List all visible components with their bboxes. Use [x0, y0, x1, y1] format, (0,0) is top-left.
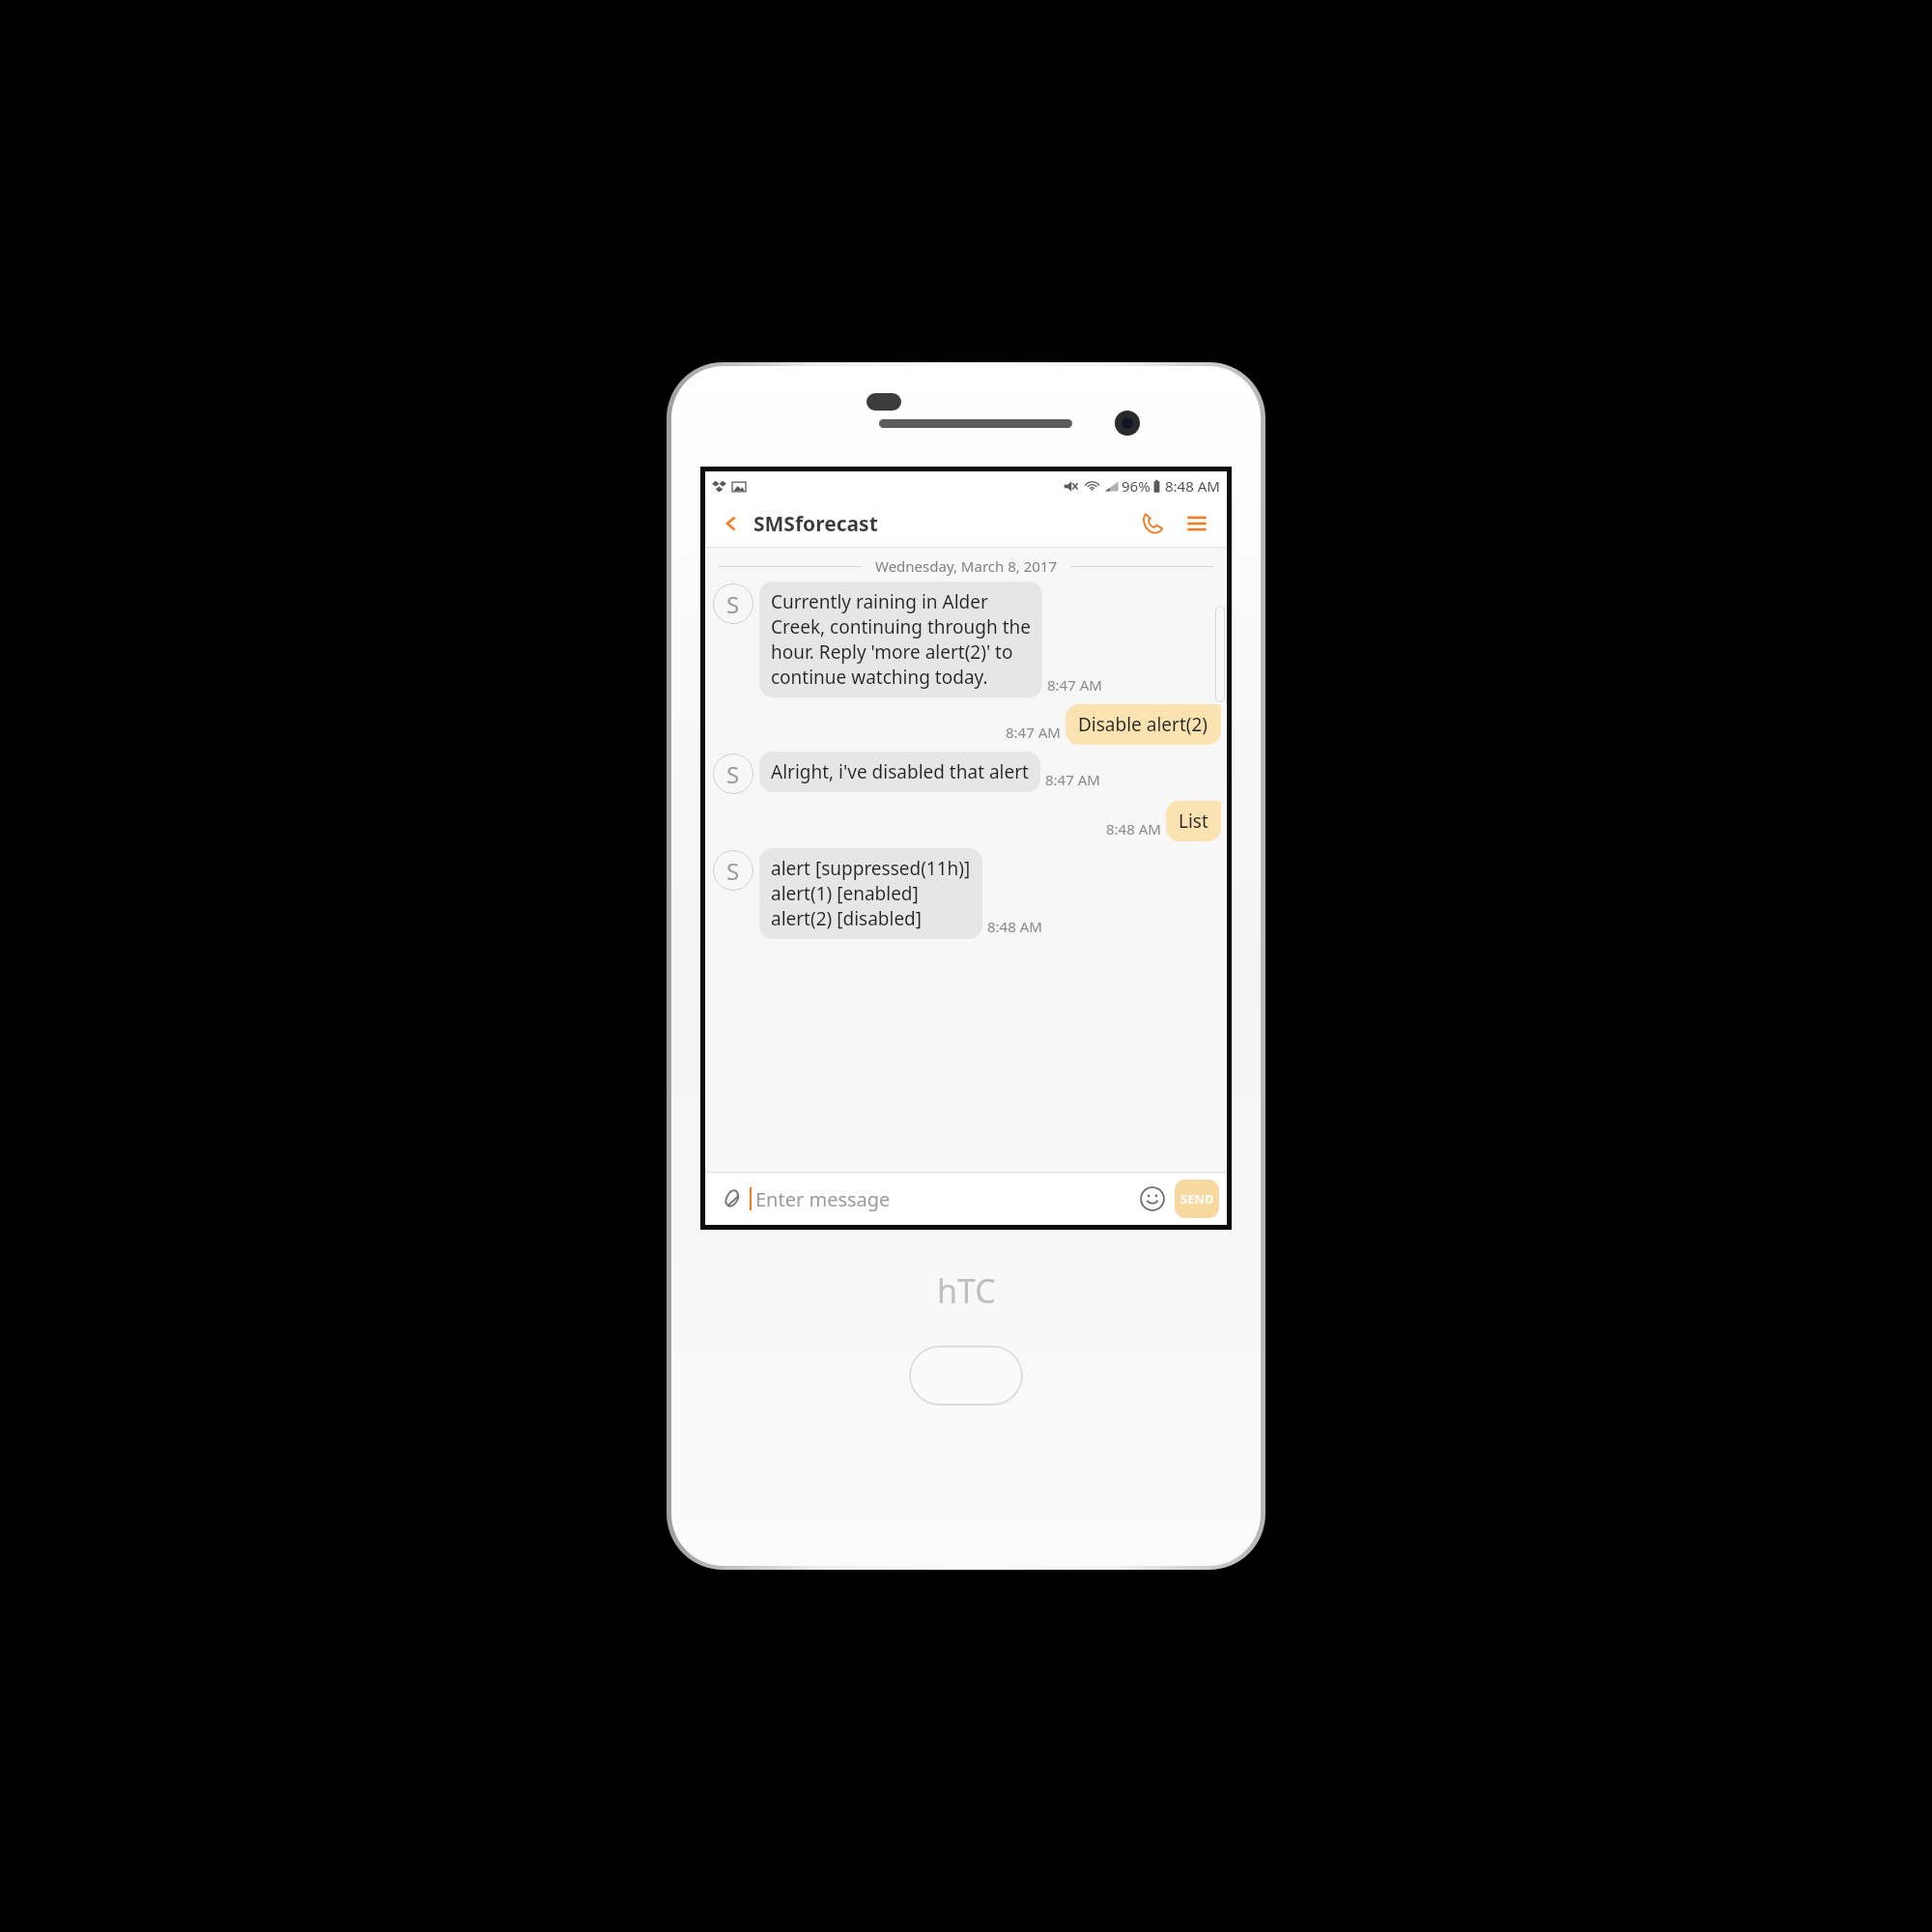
staticText: hTC	[937, 1268, 996, 1313]
button[interactable]: Disable alert(2)	[1065, 704, 1221, 745]
staticText: alert(1) [enabled]	[771, 881, 919, 906]
button[interactable]: Menu	[1179, 505, 1215, 542]
staticText: SEND	[1180, 1190, 1214, 1207]
button[interactable]: Back	[715, 507, 748, 540]
staticText: continue watching today.	[771, 665, 988, 690]
staticText: Disable alert(2)	[1078, 712, 1208, 737]
staticText: Creek, continuing through the	[771, 614, 1031, 639]
staticText: List	[1179, 809, 1208, 834]
button[interactable]: alert [suppressed(11h)]	[759, 848, 982, 939]
staticText: S	[726, 758, 740, 790]
staticText: hour. Reply 'more alert(2)' to	[771, 639, 1013, 665]
button[interactable]: Home	[909, 1346, 1023, 1406]
button[interactable]: Currently raining in Alder	[759, 582, 1042, 697]
staticText: Currently raining in Alder	[771, 589, 988, 614]
staticText: Enter message	[755, 1186, 1134, 1212]
staticText: 8:48 AM	[1106, 819, 1161, 838]
staticText: 8:47 AM	[1047, 675, 1102, 695]
button[interactable]: List	[1166, 801, 1221, 841]
staticText: S	[726, 588, 740, 620]
staticText: 8:48 AM	[987, 917, 1042, 936]
staticText: 8:48 AM	[1165, 476, 1220, 496]
staticText: 8:47 AM	[1045, 770, 1100, 789]
button[interactable]: Attach	[715, 1182, 748, 1215]
button[interactable]: Emoji	[1134, 1180, 1171, 1217]
staticText: SMSforecast	[753, 510, 878, 538]
staticText: alert(2) [disabled]	[771, 906, 923, 931]
staticText: Alright, i've disabled that alert	[771, 759, 1029, 784]
staticText: 8:47 AM	[1006, 723, 1061, 742]
staticText: 96%	[1122, 476, 1151, 496]
button[interactable]: Call	[1134, 505, 1171, 542]
button[interactable]: SEND	[1175, 1179, 1219, 1218]
staticText: S	[726, 855, 740, 887]
button[interactable]: Alright, i've disabled that alert	[759, 752, 1040, 792]
staticText: alert [suppressed(11h)]	[771, 856, 971, 881]
staticText: Wednesday, March 8, 2017	[875, 556, 1057, 576]
